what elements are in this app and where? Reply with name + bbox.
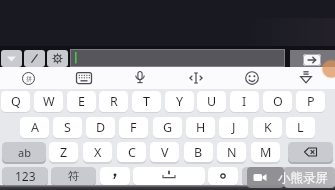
button[interactable]: K <box>253 117 282 138</box>
button[interactable] <box>303 54 321 66</box>
staticText: P <box>307 93 315 110</box>
staticText: 符 <box>68 169 80 183</box>
staticText: G <box>163 119 173 136</box>
button[interactable] <box>242 167 333 185</box>
button[interactable]: J <box>219 117 248 138</box>
button[interactable]: V <box>150 142 179 162</box>
staticText: 123 <box>15 168 36 184</box>
button[interactable]: W <box>34 91 63 112</box>
staticText: 小熊录屏 <box>278 170 328 186</box>
button[interactable] <box>100 167 130 185</box>
button[interactable]: 拼 <box>14 67 42 89</box>
button[interactable] <box>70 49 285 67</box>
staticText: Y <box>176 93 184 110</box>
button[interactable] <box>1 50 22 67</box>
button[interactable] <box>70 67 98 89</box>
button[interactable]: G <box>153 117 182 138</box>
button[interactable]: C <box>117 142 146 162</box>
button[interactable]: M <box>251 142 280 162</box>
button[interactable] <box>47 50 68 67</box>
staticText: W <box>43 93 55 110</box>
staticText: D <box>96 119 106 136</box>
button[interactable] <box>292 67 320 89</box>
button[interactable]: 符 <box>51 167 96 185</box>
staticText: M <box>260 144 272 161</box>
button[interactable]: Q <box>1 91 30 112</box>
staticText: L <box>297 119 304 136</box>
staticText: F <box>130 119 137 136</box>
staticText: Z <box>60 144 68 161</box>
staticText: B <box>194 144 203 161</box>
button[interactable]: O <box>263 91 292 112</box>
staticText: S <box>64 119 71 136</box>
button[interactable]: N <box>217 142 246 162</box>
button[interactable]: F <box>119 117 148 138</box>
button[interactable]: S <box>53 117 82 138</box>
button[interactable]: 123 <box>2 167 48 185</box>
button[interactable]: U <box>197 91 226 112</box>
button[interactable]: E <box>67 91 96 112</box>
button[interactable] <box>133 167 205 185</box>
staticText: K <box>264 119 272 136</box>
button[interactable]: ab <box>2 142 46 162</box>
button[interactable]: T <box>132 91 161 112</box>
button[interactable] <box>126 67 154 89</box>
button[interactable]: R <box>99 91 128 112</box>
button[interactable] <box>182 67 210 89</box>
staticText: N <box>227 144 237 161</box>
staticText: J <box>232 119 236 136</box>
staticText: O <box>273 93 283 110</box>
button[interactable] <box>24 50 45 67</box>
button[interactable]: B <box>184 142 213 162</box>
staticText: H <box>196 119 206 136</box>
button[interactable]: I <box>230 91 259 112</box>
staticText: X <box>94 144 102 161</box>
button[interactable]: Z <box>49 142 78 162</box>
button[interactable]: H <box>186 117 215 138</box>
staticText: V <box>161 144 169 161</box>
button[interactable]: X <box>83 142 112 162</box>
staticText: 拼 <box>26 75 32 83</box>
staticText: ab <box>18 145 31 160</box>
staticText: T <box>143 93 150 110</box>
button[interactable]: L <box>286 117 315 138</box>
button[interactable]: A <box>20 117 49 138</box>
button[interactable] <box>238 67 266 89</box>
button[interactable] <box>208 167 238 185</box>
staticText: A <box>31 119 39 136</box>
button[interactable]: P <box>296 91 325 112</box>
staticText: C <box>128 144 136 161</box>
button[interactable] <box>288 142 333 162</box>
staticText: I <box>242 93 247 110</box>
button[interactable] <box>320 58 335 80</box>
staticText: R <box>110 93 118 110</box>
button[interactable]: D <box>86 117 115 138</box>
staticText: E <box>78 93 85 110</box>
staticText: U <box>207 93 217 110</box>
button[interactable]: Y <box>165 91 194 112</box>
staticText: Q <box>11 93 21 110</box>
